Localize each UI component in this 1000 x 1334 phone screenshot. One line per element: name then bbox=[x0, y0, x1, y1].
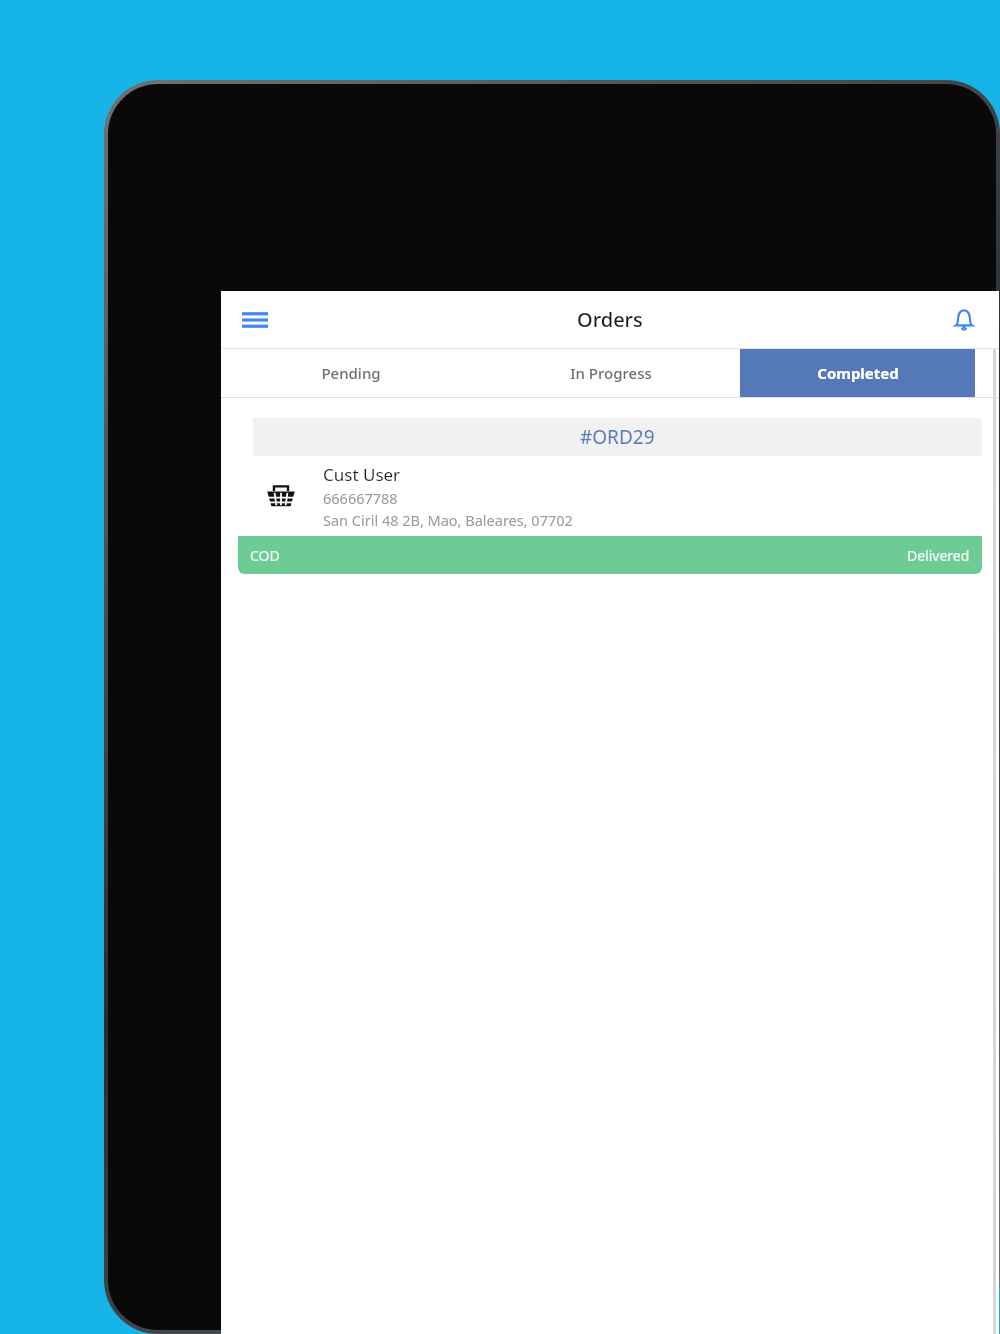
button[interactable]: Completed bbox=[740, 349, 975, 397]
staticText: Completed bbox=[817, 363, 899, 383]
staticText: Cust User bbox=[323, 463, 401, 486]
staticText: Orders bbox=[577, 306, 643, 333]
staticText: Delivered bbox=[907, 546, 970, 565]
staticText: 666667788 bbox=[323, 488, 398, 508]
button[interactable]: #ORD29 bbox=[238, 414, 982, 574]
staticText: #ORD29 bbox=[580, 424, 655, 450]
staticText: In Progress bbox=[570, 363, 652, 383]
button[interactable]: Notifications bbox=[941, 297, 987, 343]
staticText: San Ciril 48 2B, Mao, Baleares, 07702 bbox=[323, 510, 573, 530]
button[interactable]: In Progress bbox=[481, 349, 740, 397]
button[interactable]: Pending bbox=[221, 349, 481, 397]
staticText: Pending bbox=[321, 363, 381, 383]
staticText: COD bbox=[250, 546, 280, 565]
button[interactable]: Menu bbox=[231, 296, 279, 344]
